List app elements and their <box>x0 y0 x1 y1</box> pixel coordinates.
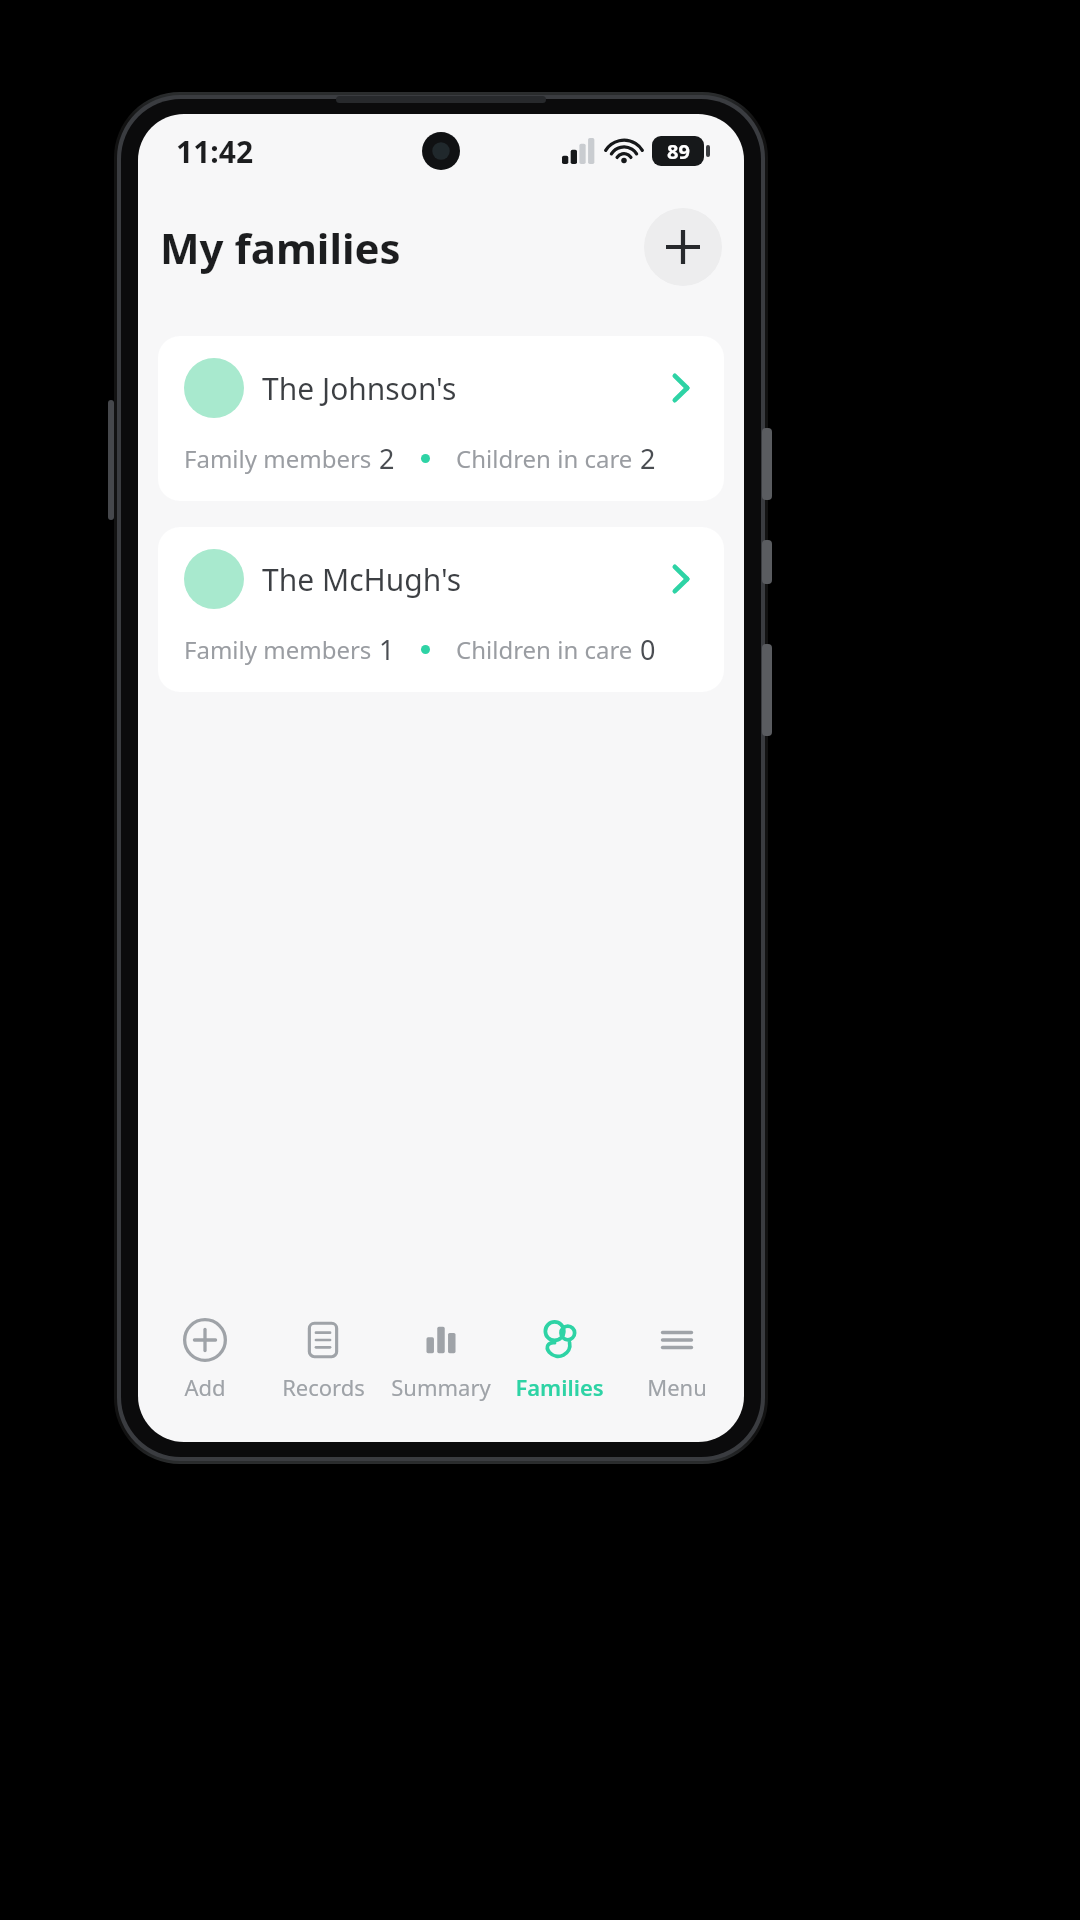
staticText: Family members <box>184 442 372 475</box>
button[interactable]: Records <box>264 1304 382 1416</box>
staticText: Records <box>282 1372 365 1402</box>
staticText: Children in care <box>456 442 633 475</box>
button[interactable]: Add family <box>644 208 722 286</box>
staticText: My families <box>160 219 401 276</box>
button[interactable]: Families <box>500 1304 618 1416</box>
button[interactable]: Summary <box>382 1304 500 1416</box>
button[interactable]: The McHugh's <box>158 527 724 692</box>
staticText: Menu <box>647 1372 707 1402</box>
staticText: The McHugh's <box>262 559 462 600</box>
staticText: Children in care <box>456 633 633 666</box>
staticText: 2 <box>640 440 656 477</box>
other: Open The Johnson's <box>660 367 702 409</box>
button[interactable]: Add <box>146 1304 264 1416</box>
staticText: 2 <box>379 440 395 477</box>
button[interactable]: The Johnson's <box>158 336 724 501</box>
staticText: Families <box>515 1372 604 1402</box>
button[interactable]: Menu <box>618 1304 736 1416</box>
staticText: Add <box>184 1372 226 1402</box>
other: Open The McHugh's <box>660 558 702 600</box>
staticText: 0 <box>640 631 656 668</box>
staticText: The Johnson's <box>262 368 457 409</box>
staticText: 89 <box>667 138 690 165</box>
staticText: Summary <box>391 1372 491 1402</box>
staticText: 11:42 <box>176 131 254 172</box>
staticText: 1 <box>379 631 395 668</box>
staticText: Family members <box>184 633 372 666</box>
